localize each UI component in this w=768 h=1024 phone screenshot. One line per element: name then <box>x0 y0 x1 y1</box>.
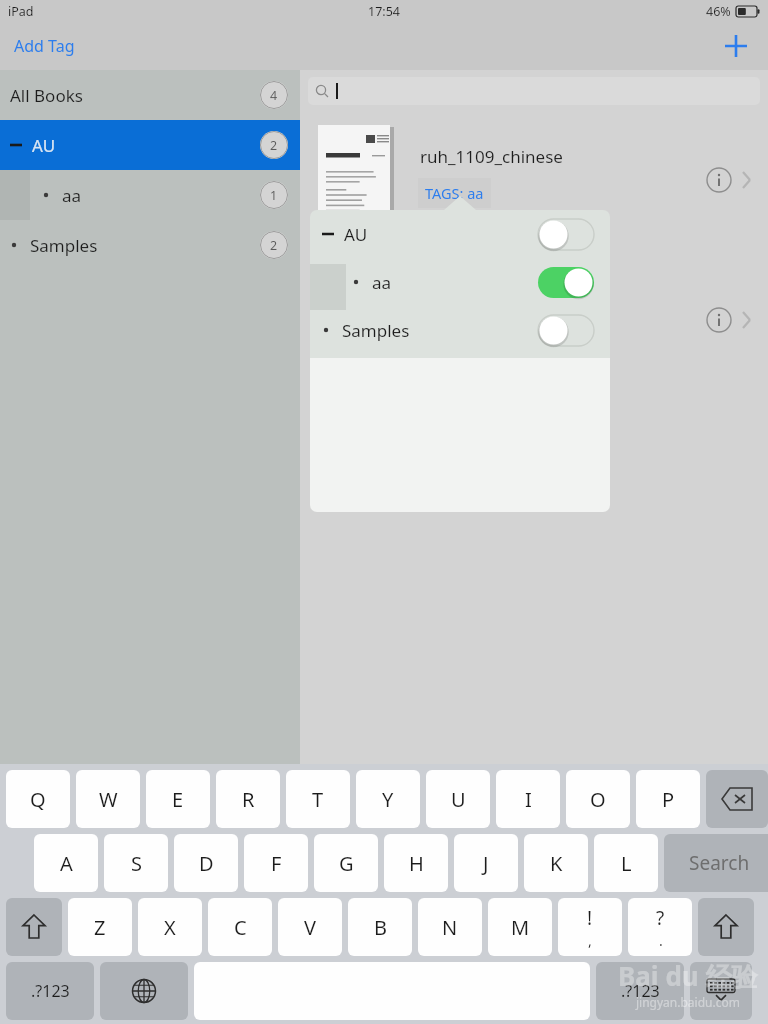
button[interactable]: S <box>104 834 168 892</box>
staticText: L <box>621 850 632 877</box>
button[interactable]: AU <box>0 120 300 170</box>
button[interactable]: Shift <box>698 898 754 956</box>
button[interactable]: A <box>34 834 98 892</box>
staticText: AU <box>344 223 368 246</box>
button[interactable]: I <box>496 770 560 828</box>
staticText: M <box>511 914 530 941</box>
staticText: W <box>99 786 118 813</box>
button[interactable]: D <box>174 834 238 892</box>
staticText: P <box>662 786 675 813</box>
staticText: aa <box>372 271 392 294</box>
button[interactable]: L <box>594 834 658 892</box>
button[interactable]: aa <box>310 258 610 306</box>
staticText: E <box>172 786 184 813</box>
button[interactable]: Q <box>6 770 70 828</box>
staticText: D <box>199 850 214 877</box>
button[interactable]: O <box>566 770 630 828</box>
staticText: U <box>451 786 466 813</box>
button[interactable]: Y <box>356 770 420 828</box>
staticText: ? <box>656 905 665 931</box>
button[interactable]: Add Tag <box>6 29 83 63</box>
staticText: B <box>374 914 387 941</box>
button[interactable]: X <box>138 898 202 956</box>
staticText: J <box>483 850 489 877</box>
button[interactable] <box>308 77 760 105</box>
button[interactable]: W <box>76 770 140 828</box>
button[interactable]: H <box>384 834 448 892</box>
staticText: O <box>590 786 606 813</box>
staticText: X <box>164 914 176 941</box>
button[interactable]: R <box>216 770 280 828</box>
button[interactable]: Add <box>718 28 754 64</box>
staticText: iPad <box>8 3 34 20</box>
staticText: Add Tag <box>14 35 75 57</box>
staticText: jingyan.baidu.com <box>636 994 740 1010</box>
staticText: ! <box>587 905 593 931</box>
staticText: All Books <box>10 84 83 107</box>
button[interactable]: aa <box>0 170 300 220</box>
button[interactable]: E <box>146 770 210 828</box>
button[interactable]: All Books <box>0 70 300 120</box>
button[interactable]: Off <box>538 219 594 250</box>
staticText: K <box>550 850 563 877</box>
button[interactable]: Z <box>68 898 132 956</box>
staticText: A <box>60 850 73 877</box>
staticText: H <box>409 850 424 877</box>
button[interactable]: Samples <box>310 306 610 354</box>
staticText: aa <box>62 184 82 207</box>
staticText: Bai du 经验 <box>618 958 758 994</box>
button[interactable]: C <box>208 898 272 956</box>
staticText: G <box>339 850 354 877</box>
staticText: 46% <box>706 3 731 20</box>
staticText: ruh_1109_chinese <box>420 145 563 168</box>
button[interactable]: Off <box>538 315 594 346</box>
button[interactable]: Samples <box>0 220 300 270</box>
button[interactable]: Shift <box>6 898 62 956</box>
button[interactable]: Info <box>704 305 734 335</box>
staticText: TAGS: aa <box>425 183 484 203</box>
button[interactable]: B <box>348 898 412 956</box>
staticText: Search <box>689 850 750 876</box>
staticText: .?123 <box>31 980 70 1002</box>
staticText: I <box>525 786 532 813</box>
staticText: . <box>659 931 663 950</box>
staticText: T <box>312 786 324 813</box>
button[interactable]: Change keyboard <box>100 962 188 1020</box>
button[interactable]: P <box>636 770 700 828</box>
staticText: 1 <box>270 187 278 204</box>
staticText: Samples <box>342 319 410 342</box>
button[interactable]: K <box>524 834 588 892</box>
button[interactable]: V <box>278 898 342 956</box>
button[interactable]: U <box>426 770 490 828</box>
staticText: S <box>131 850 142 877</box>
staticText: N <box>442 914 458 941</box>
staticText: Q <box>30 786 46 813</box>
button[interactable]: J <box>454 834 518 892</box>
staticText: AU <box>32 134 56 157</box>
button[interactable]: N <box>418 898 482 956</box>
button[interactable]: TAGS: aa <box>418 178 491 208</box>
staticText: V <box>304 914 316 941</box>
staticText: 2 <box>270 237 278 254</box>
staticText: Z <box>94 914 106 941</box>
button[interactable]: On <box>538 267 594 298</box>
staticText: Samples <box>30 234 98 257</box>
staticText: R <box>242 786 255 813</box>
staticText: 2 <box>270 137 278 154</box>
button[interactable]: Hide keyboard <box>690 962 752 1020</box>
staticText: Y <box>382 786 394 813</box>
button[interactable]: ? <box>628 898 692 956</box>
button[interactable]: Info <box>704 165 734 195</box>
staticText: F <box>271 850 282 877</box>
button[interactable]: G <box>314 834 378 892</box>
button[interactable]: F <box>244 834 308 892</box>
button[interactable]: .?123 <box>596 962 684 1020</box>
button[interactable]: ! <box>558 898 622 956</box>
button[interactable]: AU <box>310 210 610 258</box>
button[interactable]: Search <box>664 834 768 892</box>
button[interactable]: Backspace <box>706 770 768 828</box>
button[interactable]: .?123 <box>6 962 94 1020</box>
button[interactable]: T <box>286 770 350 828</box>
button[interactable]: M <box>488 898 552 956</box>
